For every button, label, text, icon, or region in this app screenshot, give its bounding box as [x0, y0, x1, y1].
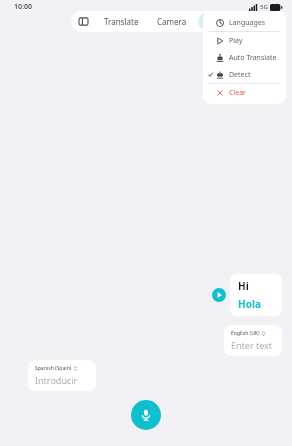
- button[interactable]: Camera: [150, 13, 194, 30]
- staticText: Clear Conversation: [229, 88, 282, 98]
- staticText: Spanish (Spain): [35, 365, 72, 372]
- button[interactable]: English (UK): [224, 325, 282, 356]
- button[interactable]: Play Translations: [203, 32, 286, 49]
- staticText: English (UK): [231, 330, 260, 337]
- staticText: Auto Translate: [229, 53, 277, 63]
- button[interactable]: Hi: [230, 274, 282, 316]
- staticText: Conversation: [205, 16, 256, 27]
- button[interactable]: Clear Conversation: [203, 84, 286, 101]
- button[interactable]: Auto Translate: [203, 49, 286, 66]
- button[interactable]: Spanish (Spain): [28, 360, 96, 391]
- button[interactable]: Translate: [97, 13, 146, 30]
- staticText: Enter text: [231, 339, 273, 351]
- button[interactable]: Detect Language: [203, 66, 286, 83]
- button[interactable]: Play translation: [212, 288, 226, 302]
- staticText: Introducir texto: [35, 374, 89, 386]
- button[interactable]: Languages: [203, 14, 286, 31]
- staticText: 10:00: [14, 2, 32, 12]
- staticText: Detect Language: [229, 70, 282, 80]
- staticText: Translate: [104, 16, 139, 27]
- staticText: Camera: [157, 16, 187, 27]
- staticText: Hi: [238, 279, 249, 293]
- staticText: Play Translations: [229, 36, 282, 46]
- button[interactable]: Conversation: [198, 13, 263, 30]
- button[interactable]: Microphone: [131, 400, 161, 430]
- button[interactable]: Toggle sidebar: [71, 11, 95, 32]
- staticText: Hola: [238, 297, 261, 311]
- staticText: Languages: [229, 18, 266, 28]
- staticText: 5G: [260, 3, 268, 11]
